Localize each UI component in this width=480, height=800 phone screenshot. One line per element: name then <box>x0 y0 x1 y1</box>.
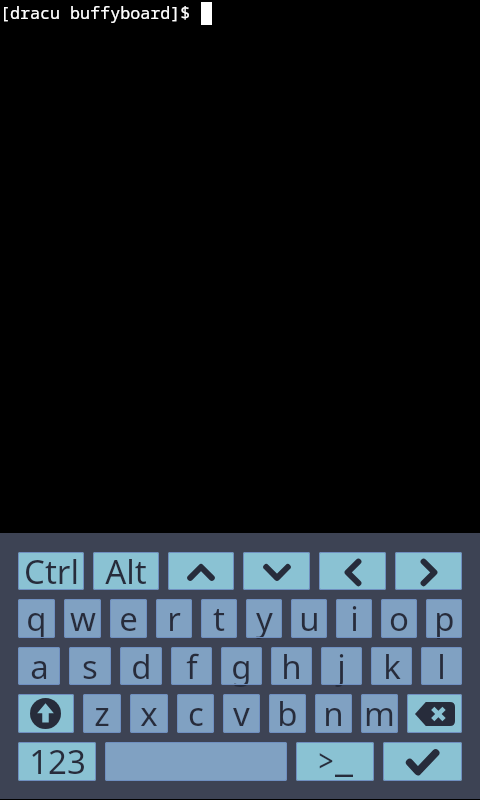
button[interactable]: j <box>321 647 362 685</box>
button[interactable]: k <box>371 647 412 685</box>
button[interactable]: m <box>361 694 398 733</box>
staticText: w <box>70 596 96 641</box>
button[interactable]: Backspace <box>407 694 462 733</box>
button[interactable]: v <box>223 694 260 733</box>
button[interactable]: Arrow right <box>395 552 462 590</box>
button[interactable]: e <box>110 599 147 638</box>
staticText: s <box>82 644 98 689</box>
staticText: d <box>131 644 152 689</box>
button[interactable]: t <box>201 599 237 638</box>
button[interactable]: d <box>120 647 162 685</box>
button[interactable]: q <box>18 599 55 638</box>
button[interactable]: u <box>291 599 327 638</box>
staticText: f <box>186 644 198 689</box>
staticText: q <box>26 596 47 641</box>
button[interactable]: p <box>426 599 462 638</box>
button[interactable]: a <box>18 647 60 685</box>
button[interactable]: Shift <box>18 694 74 733</box>
button[interactable]: 123 <box>18 742 96 781</box>
button[interactable]: i <box>336 599 372 638</box>
staticText: m <box>364 691 395 736</box>
staticText: x <box>140 691 158 736</box>
button[interactable]: s <box>69 647 111 685</box>
button[interactable]: f <box>171 647 212 685</box>
button[interactable]: Ctrl <box>18 552 84 590</box>
staticText: r <box>167 596 181 641</box>
button[interactable]: w <box>64 599 101 638</box>
button[interactable]: h <box>271 647 312 685</box>
button[interactable]: r <box>156 599 192 638</box>
staticText: c <box>188 691 204 736</box>
button[interactable]: y <box>246 599 282 638</box>
button[interactable]: x <box>130 694 168 733</box>
button[interactable]: Arrow left <box>319 552 386 590</box>
button[interactable]: o <box>381 599 417 638</box>
staticText: o <box>389 596 409 641</box>
button[interactable]: n <box>315 694 352 733</box>
staticText: 123 <box>29 739 86 784</box>
staticText: b <box>277 691 298 736</box>
button[interactable]: l <box>421 647 462 685</box>
button[interactable]: Arrow down <box>243 552 310 590</box>
button[interactable]: Enter <box>383 742 462 781</box>
button[interactable]: Terminal <box>296 742 374 781</box>
staticText: z <box>94 691 110 736</box>
staticText: a <box>30 644 49 689</box>
staticText: t <box>213 596 225 641</box>
staticText: n <box>323 691 344 736</box>
button[interactable]: Arrow up <box>168 552 234 590</box>
button[interactable]: z <box>83 694 121 733</box>
staticText: j <box>337 644 346 689</box>
staticText: h <box>281 644 302 689</box>
staticText: g <box>231 644 252 689</box>
staticText: p <box>434 596 455 641</box>
staticText: i <box>350 596 359 641</box>
staticText: [dracu buffyboard]$ <box>0 1 191 24</box>
button[interactable]: g <box>221 647 262 685</box>
button[interactable]: Alt <box>93 552 159 590</box>
staticText: Ctrl <box>24 549 79 594</box>
staticText: l <box>437 644 446 689</box>
button[interactable]: b <box>269 694 306 733</box>
staticText: k <box>383 644 401 689</box>
staticText: >_ <box>317 740 353 781</box>
staticText: Alt <box>105 549 147 594</box>
button[interactable]: Space <box>105 742 287 781</box>
staticText: y <box>256 596 273 641</box>
button[interactable]: c <box>177 694 214 733</box>
staticText: v <box>233 691 250 736</box>
staticText: e <box>119 596 138 641</box>
staticText: u <box>299 596 320 641</box>
